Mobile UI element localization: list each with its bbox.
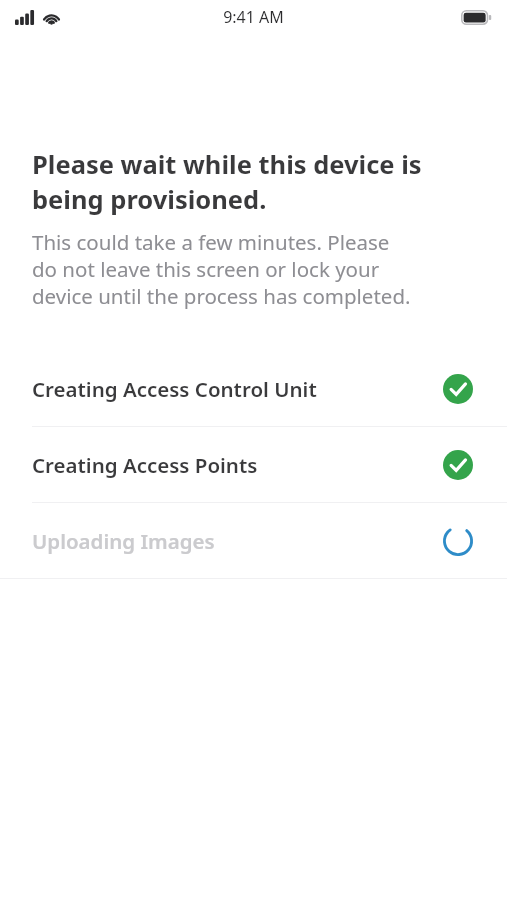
staticText: This could take a few minutes. Please do… bbox=[32, 228, 415, 310]
button[interactable]: Creating Access Control Unit bbox=[0, 351, 507, 426]
staticText: Uploading Images bbox=[32, 527, 215, 555]
staticText: Please wait while this device is being p… bbox=[32, 147, 447, 216]
other: Completed bbox=[443, 374, 473, 404]
other: Completed bbox=[443, 450, 473, 480]
button[interactable]: Uploading Images bbox=[0, 503, 507, 578]
staticText: 9:41 AM bbox=[223, 6, 284, 28]
staticText: Creating Access Control Unit bbox=[32, 375, 317, 403]
staticText: Creating Access Points bbox=[32, 451, 258, 479]
button[interactable]: Creating Access Points bbox=[0, 427, 507, 502]
other: Loading bbox=[443, 526, 473, 556]
